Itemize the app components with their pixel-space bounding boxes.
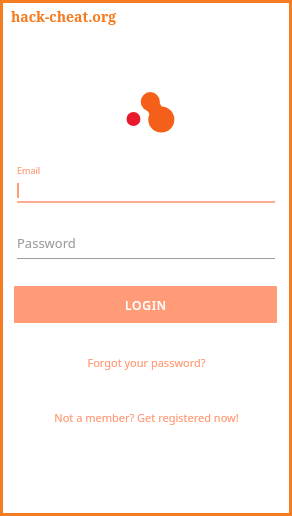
button[interactable]: Password [3,234,289,264]
other: App logo [121,88,179,136]
button[interactable]: LOGIN [14,286,277,323]
staticText: hack-cheat.org [11,7,117,26]
staticText: Not a member? Get registered now! [54,410,239,425]
staticText: Password [17,234,76,252]
button[interactable]: Email [3,164,289,204]
button[interactable]: Not a member? Get registered now! [3,406,289,428]
staticText: Forgot your password? [87,355,206,370]
staticText: LOGIN [125,297,167,313]
staticText: Email [17,164,41,176]
button[interactable]: Forgot your password? [3,351,289,373]
